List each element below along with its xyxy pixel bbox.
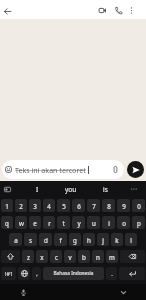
- button[interactable]: Shift: [1, 250, 20, 263]
- button[interactable]: Clipboard: [1, 183, 14, 196]
- button[interactable]: e: [29, 216, 41, 229]
- staticText: x: [40, 253, 44, 261]
- staticText: ,: [36, 270, 38, 278]
- button[interactable]: x: [36, 250, 48, 263]
- button[interactable]: Attach: [111, 165, 120, 174]
- staticText: h: [87, 236, 91, 244]
- staticText: c: [55, 253, 58, 261]
- staticText: a: [14, 236, 18, 244]
- button[interactable]: v: [64, 250, 76, 263]
- staticText: q: [5, 219, 9, 227]
- button[interactable]: ,: [32, 267, 41, 280]
- button[interactable]: k: [111, 233, 123, 246]
- button[interactable]: !#1: [1, 267, 16, 280]
- button[interactable]: 7: [87, 199, 100, 212]
- button[interactable]: 2: [15, 199, 27, 212]
- button[interactable]: Hide keyboard: [118, 287, 128, 297]
- button[interactable]: u: [87, 216, 100, 229]
- button[interactable]: you: [54, 181, 87, 197]
- staticText: 0: [137, 202, 141, 210]
- staticText: r: [48, 219, 51, 227]
- button[interactable]: 8: [102, 199, 115, 212]
- button[interactable]: t: [57, 216, 70, 229]
- staticText: 1: [5, 202, 9, 210]
- staticText: m: [109, 253, 115, 261]
- button[interactable]: Bahasa Indonesia: [43, 267, 104, 280]
- staticText: o: [122, 219, 126, 227]
- button[interactable]: 3: [29, 199, 41, 212]
- button[interactable]: g: [69, 233, 81, 246]
- button[interactable]: 9: [117, 199, 130, 212]
- button[interactable]: Enter: [119, 267, 145, 280]
- button[interactable]: f: [54, 233, 67, 246]
- button[interactable]: w: [15, 216, 27, 229]
- button[interactable]: m: [106, 250, 118, 263]
- staticText: Bahasa Indonesia: [53, 270, 94, 277]
- staticText: d: [44, 236, 48, 244]
- staticText: g: [73, 236, 77, 244]
- staticText: w: [19, 219, 24, 227]
- button[interactable]: h: [83, 233, 95, 246]
- button[interactable]: d: [39, 233, 52, 246]
- button[interactable]: .: [106, 267, 117, 280]
- staticText: !#1: [5, 270, 13, 277]
- staticText: i: [108, 219, 110, 227]
- button[interactable]: Back: [0, 4, 14, 18]
- button[interactable]: b: [78, 250, 90, 263]
- staticText: 9: [122, 202, 126, 210]
- button[interactable]: Teks ini akan tercoret: [2, 160, 124, 179]
- staticText: 7: [92, 202, 96, 210]
- staticText: b: [82, 253, 86, 261]
- button[interactable]: c: [50, 250, 62, 263]
- button[interactable]: i: [102, 216, 115, 229]
- staticText: u: [92, 219, 96, 227]
- button[interactable]: r: [43, 216, 55, 229]
- button[interactable]: More options: [125, 4, 138, 17]
- staticText: 8: [107, 202, 111, 210]
- staticText: n: [96, 253, 100, 261]
- staticText: you: [65, 185, 77, 194]
- button[interactable]: 4: [43, 199, 55, 212]
- staticText: 2: [19, 202, 23, 210]
- button[interactable]: 1: [1, 199, 13, 212]
- staticText: z: [27, 253, 30, 261]
- button[interactable]: n: [92, 250, 104, 263]
- staticText: l: [130, 236, 132, 244]
- button[interactable]: z: [22, 250, 34, 263]
- staticText: 6: [77, 202, 81, 210]
- staticText: .: [111, 270, 113, 278]
- staticText: y: [77, 219, 81, 227]
- staticText: p: [137, 219, 141, 227]
- staticText: 5: [62, 202, 66, 210]
- button[interactable]: q: [1, 216, 13, 229]
- button[interactable]: Call: [112, 4, 125, 17]
- staticText: f: [59, 236, 62, 244]
- button[interactable]: y: [72, 216, 85, 229]
- staticText: k: [115, 236, 119, 244]
- button[interactable]: p: [132, 216, 145, 229]
- staticText: j: [102, 236, 104, 244]
- button[interactable]: 0: [132, 199, 145, 212]
- staticText: 4: [47, 202, 51, 210]
- staticText: v: [68, 253, 72, 261]
- staticText: s: [29, 236, 32, 244]
- button[interactable]: l: [125, 233, 137, 246]
- staticText: 3: [33, 202, 37, 210]
- button[interactable]: I: [20, 181, 54, 197]
- button[interactable]: Video call: [96, 4, 109, 17]
- button[interactable]: Voice input: [18, 287, 28, 297]
- staticText: e: [33, 219, 37, 227]
- button[interactable]: More suggestions: [123, 181, 145, 197]
- button[interactable]: s: [24, 233, 37, 246]
- button[interactable]: 5: [57, 199, 70, 212]
- staticText: Teks ini akan tercoret: [15, 165, 86, 175]
- button[interactable]: o: [117, 216, 130, 229]
- button[interactable]: j: [97, 233, 109, 246]
- button[interactable]: Backspace: [120, 250, 145, 263]
- button[interactable]: a: [9, 233, 22, 246]
- button[interactable]: Change language: [18, 267, 30, 280]
- button[interactable]: Send: [127, 161, 144, 178]
- staticText: is: [103, 185, 108, 194]
- button[interactable]: 6: [72, 199, 85, 212]
- button[interactable]: is: [87, 181, 123, 197]
